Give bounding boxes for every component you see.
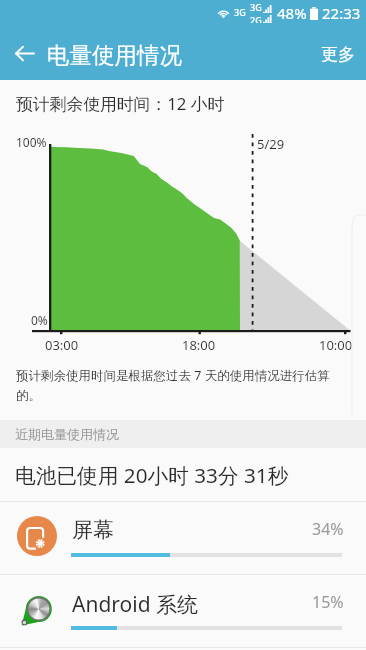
staticText: 2G (250, 14, 262, 23)
staticText: 3G (250, 1, 262, 13)
button[interactable]: Android 系统 (0, 574, 366, 647)
button[interactable]: 电池已使用 20小时 33分 31秒 (0, 448, 366, 501)
button[interactable]: 更多 (310, 32, 366, 77)
staticText: 近期电量使用情况 (15, 426, 119, 442)
button[interactable]: 屏幕 (0, 501, 366, 574)
staticText: 3G (234, 6, 246, 18)
staticText: 0% (31, 312, 48, 328)
staticText: 电池已使用 20小时 33分 31秒 (15, 461, 289, 489)
staticText: 屏幕 (72, 517, 114, 543)
staticText: 18:00 (182, 336, 216, 354)
button[interactable]: Back (6, 35, 42, 71)
staticText: 10:00 (319, 336, 353, 354)
staticText: 5/29 (257, 135, 285, 153)
staticText: 22:33 (322, 3, 361, 23)
staticText: 100% (16, 134, 47, 150)
staticText: 34% (312, 518, 344, 540)
staticText: 更多 (321, 44, 355, 65)
staticText: Android 系统 (72, 590, 199, 619)
staticText: 电量使用情况 (47, 41, 182, 69)
staticText: 48% (277, 3, 307, 23)
staticText: 03:00 (45, 336, 79, 354)
staticText: 预计剩余使用时间是根据您过去 7 天的使用情况进行估算的。 (16, 367, 340, 403)
staticText: 预计剩余使用时间：12 小时 (16, 92, 225, 115)
staticText: 15% (312, 591, 344, 613)
